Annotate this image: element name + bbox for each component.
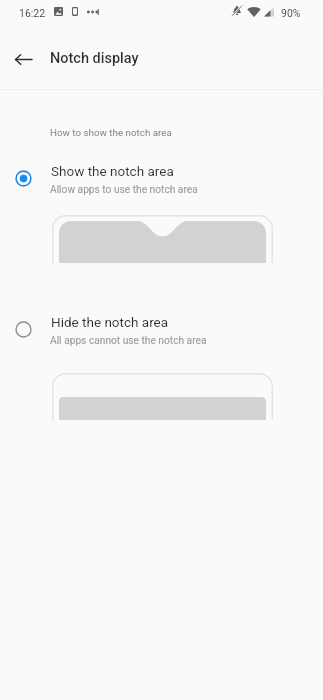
button[interactable]: Back — [4, 40, 42, 78]
staticText: How to show the notch area — [50, 127, 172, 138]
staticText: Hide the notch area — [51, 314, 169, 330]
staticText: All apps cannot use the notch area — [50, 335, 207, 347]
staticText: Allow apps to use the notch area — [50, 184, 198, 196]
button[interactable]: Show the notch area — [0, 160, 323, 204]
staticText: Notch display — [50, 50, 139, 67]
staticText: 90% — [281, 7, 301, 19]
staticText: 16:22 — [19, 7, 46, 19]
staticText: Show the notch area — [51, 163, 174, 179]
button[interactable]: Hide the notch area — [0, 311, 323, 355]
